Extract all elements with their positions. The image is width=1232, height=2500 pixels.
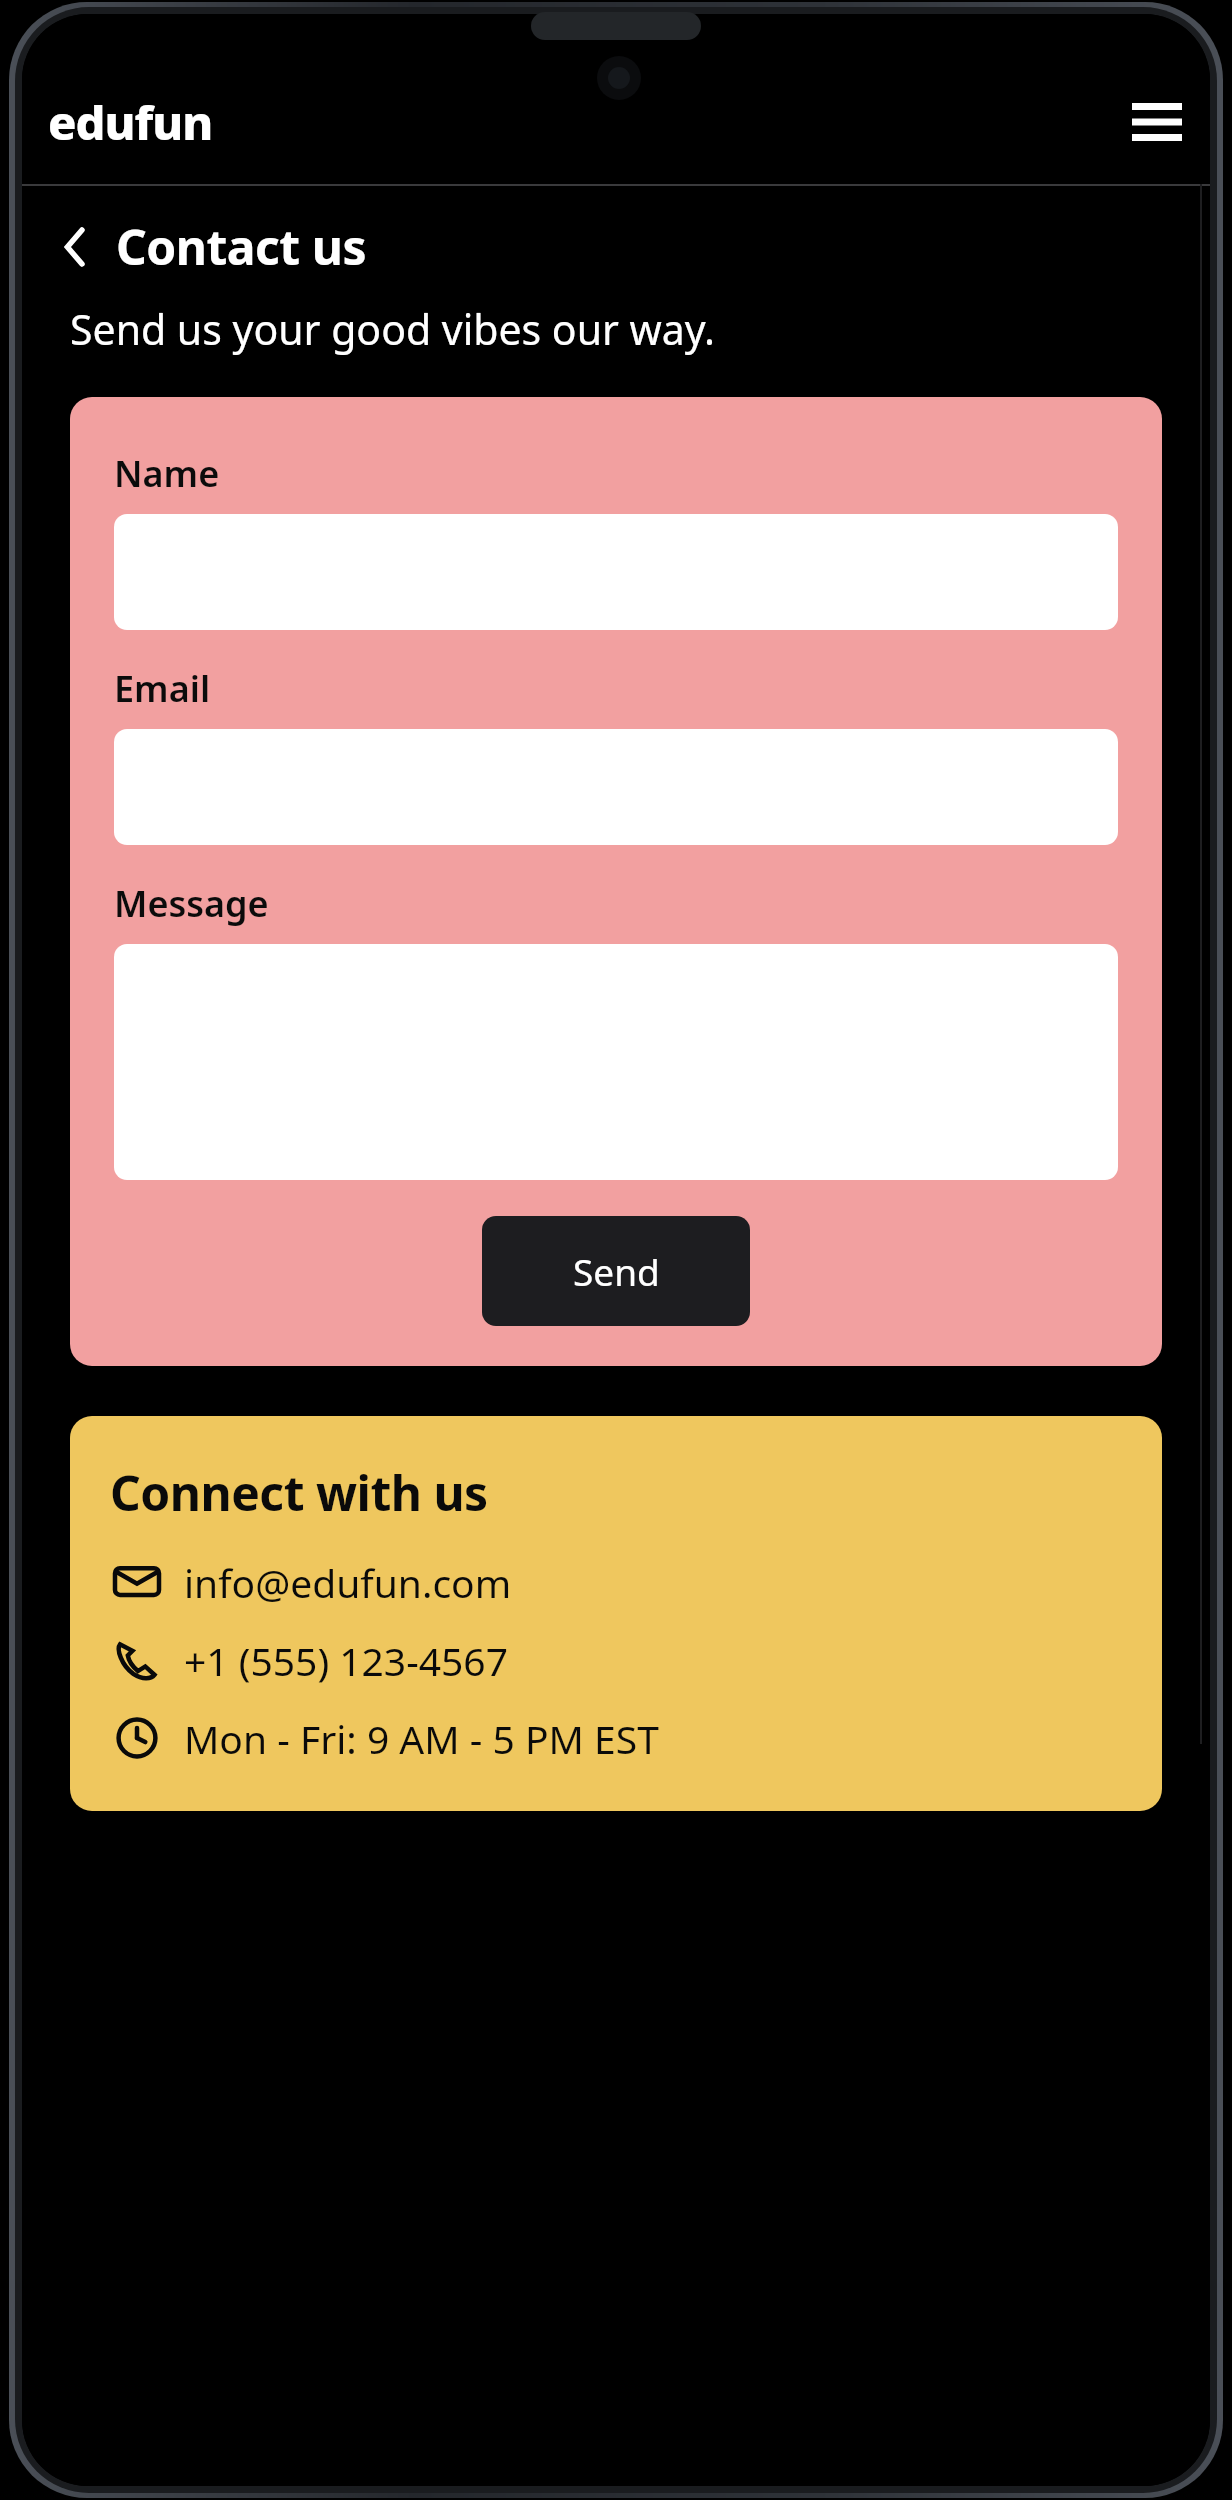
button[interactable]: +1 (555) 123-4567 xyxy=(110,1633,1132,1687)
staticText: info@edufun.com xyxy=(184,1556,512,1609)
button[interactable]: Send xyxy=(482,1216,750,1326)
staticText: Send us your good vibes our way. xyxy=(70,301,716,357)
staticText: Connect with us xyxy=(110,1460,488,1525)
staticText: Name xyxy=(114,449,220,498)
staticText: Contact us xyxy=(116,214,366,279)
button[interactable]: Email field xyxy=(114,729,1118,845)
button[interactable]: info@edufun.com xyxy=(110,1555,1132,1609)
button[interactable]: Back xyxy=(48,220,102,274)
staticText: edufun xyxy=(48,90,213,154)
button[interactable]: edufun xyxy=(48,90,213,154)
button[interactable]: Mon - Fri: 9 AM - 5 PM EST xyxy=(110,1711,1132,1765)
staticText: Mon - Fri: 9 AM - 5 PM EST xyxy=(184,1712,659,1765)
staticText: Email xyxy=(114,664,211,713)
button[interactable]: Menu xyxy=(1128,93,1186,151)
staticText: +1 (555) 123-4567 xyxy=(184,1634,508,1687)
staticText: Message xyxy=(114,879,269,928)
button[interactable]: Name field xyxy=(114,514,1118,630)
staticText: Send xyxy=(573,1246,660,1296)
